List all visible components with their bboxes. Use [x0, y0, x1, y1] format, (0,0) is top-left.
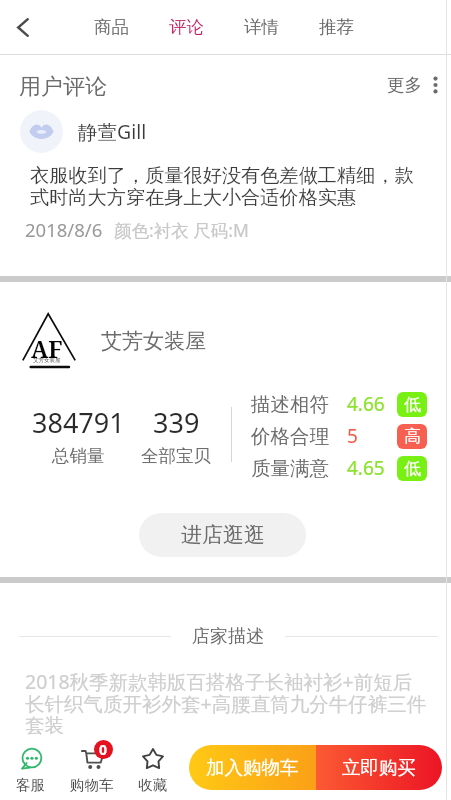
button[interactable]: 收藏: [122, 735, 183, 800]
button[interactable]: 详情: [227, 7, 296, 47]
staticText: AF: [31, 333, 63, 364]
staticText: 4.66: [347, 391, 385, 417]
staticText: 0: [99, 740, 108, 759]
staticText: 更多: [387, 74, 422, 96]
staticText: 339: [153, 404, 200, 441]
staticText: 用户评论: [19, 73, 107, 101]
staticText: 立即购买: [342, 756, 416, 779]
staticText: 静萱Gill: [78, 118, 147, 145]
button[interactable]: 进店逛逛: [139, 513, 306, 557]
staticText: 购物车: [70, 776, 114, 794]
button[interactable]: 客服: [0, 735, 61, 800]
staticText: 2018/8/6: [25, 217, 103, 242]
staticText: 5: [347, 423, 358, 449]
staticText: 低: [404, 458, 421, 479]
staticText: 店家描述: [192, 625, 264, 648]
button[interactable]: 推荐: [302, 7, 371, 47]
button[interactable]: 立即购买: [316, 745, 442, 790]
staticText: 详情: [244, 16, 279, 38]
staticText: 评论: [169, 16, 204, 38]
staticText: 价格合理: [251, 424, 329, 449]
staticText: 质量满意: [251, 456, 329, 481]
staticText: 总销量: [52, 445, 105, 467]
staticText: 进店逛逛: [181, 522, 265, 548]
staticText: 商品: [94, 16, 129, 38]
staticText: 4.65: [347, 455, 385, 481]
staticText: 艾芳女装屋: [101, 328, 206, 354]
staticText: 低: [404, 394, 421, 415]
staticText: 加入购物车: [206, 756, 299, 779]
staticText: 全部宝贝: [141, 445, 211, 467]
staticText: 衣服收到了，质量很好没有色差做工精细，款式时尚大方穿在身上大小合适价格实惠: [30, 164, 425, 210]
staticText: 384791: [32, 404, 125, 441]
button[interactable]: 评论: [152, 7, 221, 47]
staticText: 推荐: [319, 16, 354, 38]
button[interactable]: Back: [0, 0, 46, 55]
staticText: 客服: [16, 776, 45, 794]
staticText: 颜色:衬衣 尺码:M: [114, 218, 249, 242]
button[interactable]: 商品: [77, 7, 146, 47]
staticText: 艾芳女装屋: [33, 357, 61, 364]
staticText: 高: [404, 426, 421, 447]
button[interactable]: 购物车: [61, 735, 122, 800]
button[interactable]: 加入购物车: [189, 745, 316, 790]
staticText: 描述相符: [251, 392, 329, 417]
staticText: 2018秋季新款韩版百搭格子长袖衬衫+前短后长针织气质开衫外套+高腰直筒九分牛仔…: [25, 668, 429, 738]
button[interactable]: 更多: [387, 70, 438, 100]
staticText: 收藏: [138, 776, 167, 794]
